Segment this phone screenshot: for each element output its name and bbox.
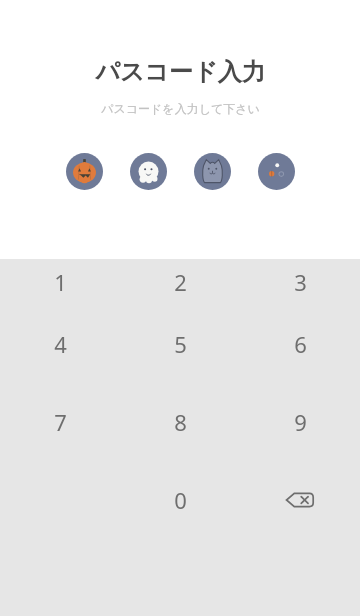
staticText: 9	[294, 407, 307, 437]
button[interactable]: 1	[0, 259, 120, 305]
button[interactable]: 3	[240, 259, 360, 305]
staticText: 3	[294, 267, 307, 297]
staticText: 1	[54, 267, 67, 297]
button[interactable]: 8	[120, 383, 240, 461]
button[interactable]: Pumpkin	[66, 153, 103, 190]
staticText: 7	[54, 407, 67, 437]
staticText: 8	[174, 407, 187, 437]
staticText: 5	[174, 329, 187, 359]
staticText: 0	[174, 485, 187, 515]
button[interactable]: 2	[120, 259, 240, 305]
button[interactable]: 4	[0, 305, 120, 383]
button[interactable]: 7	[0, 383, 120, 461]
staticText: 4	[54, 329, 67, 359]
button[interactable]: 5	[120, 305, 240, 383]
staticText: パスコード入力	[95, 57, 266, 87]
button[interactable]: 0	[120, 461, 240, 539]
button[interactable]: Cat	[194, 153, 231, 190]
button[interactable]: Ghost	[130, 153, 167, 190]
button[interactable]: Backspace	[240, 461, 360, 539]
staticText: 6	[294, 329, 307, 359]
staticText: 2	[174, 267, 187, 297]
button[interactable]: Candy	[258, 153, 295, 190]
button[interactable]: 6	[240, 305, 360, 383]
staticText: パスコードを入力して下さい	[101, 101, 260, 116]
button[interactable]: 9	[240, 383, 360, 461]
